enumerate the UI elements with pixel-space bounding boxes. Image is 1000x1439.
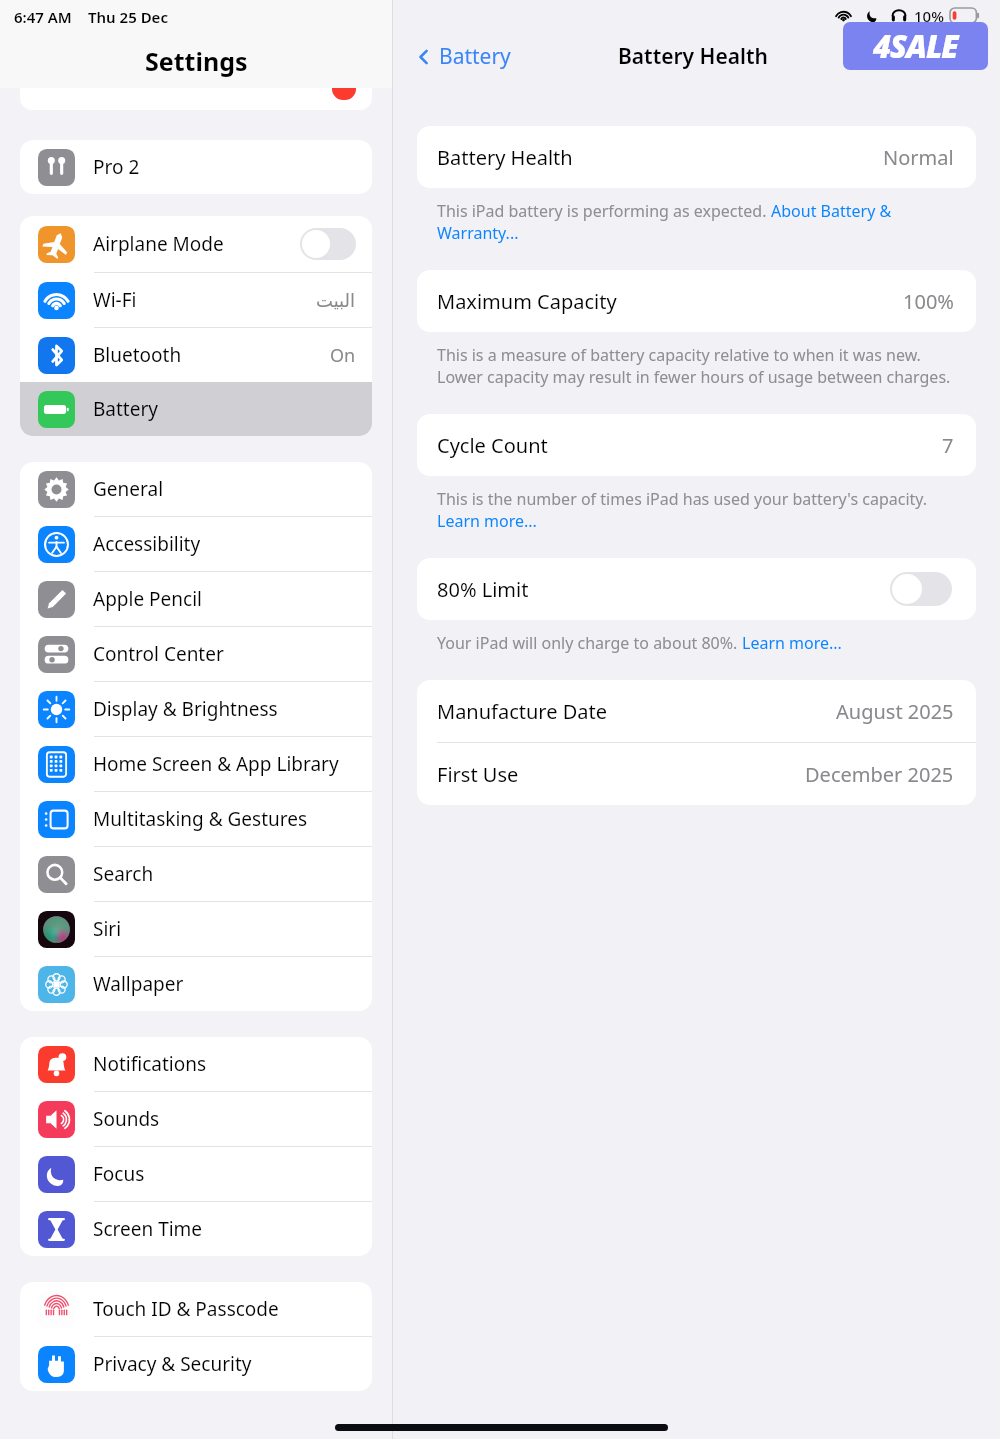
button[interactable]: Search [20, 847, 372, 901]
staticText: Notifications [93, 1051, 356, 1077]
staticText: Multitasking & Gestures [93, 806, 356, 832]
staticText: Pro 2 [93, 154, 356, 180]
staticText: Privacy & Security [93, 1351, 356, 1377]
button[interactable]: Battery Health [417, 126, 976, 188]
staticText: Siri [93, 916, 356, 942]
button[interactable]: Battery [407, 38, 517, 75]
button[interactable]: General [20, 462, 372, 516]
button[interactable]: Battery [20, 382, 372, 436]
staticText: Battery [439, 42, 511, 71]
staticText: 4SALE [873, 25, 958, 67]
button[interactable]: Pro 2 [20, 140, 372, 194]
button[interactable]: Maximum Capacity [417, 270, 976, 332]
staticText: This is a measure of battery capacity re… [437, 344, 921, 366]
staticText: This is the number of times iPad has use… [437, 488, 928, 510]
button[interactable]: Wi-Fi [20, 273, 372, 327]
button[interactable]: 4SALE watermark [843, 22, 988, 70]
staticText: Sounds [93, 1106, 356, 1132]
staticText: Maximum Capacity [437, 288, 903, 315]
staticText: August 2025 [836, 698, 954, 725]
staticText: Bluetooth [93, 342, 330, 368]
staticText: 100% [903, 288, 954, 315]
staticText: This iPad battery is performing as expec… [437, 200, 771, 222]
staticText: Wi-Fi [93, 287, 316, 313]
button[interactable] [20, 88, 372, 110]
button[interactable]: Airplane Mode [20, 216, 372, 272]
staticText: البيت [316, 290, 356, 311]
button[interactable]: Bluetooth [20, 328, 372, 382]
staticText: Battery Health [618, 42, 768, 71]
button[interactable]: Toggle off [890, 572, 952, 606]
button[interactable]: 80% Limit [417, 558, 976, 620]
button[interactable]: Focus [20, 1147, 372, 1201]
button[interactable]: Multitasking & Gestures [20, 792, 372, 846]
staticText: Apple Pencil [93, 586, 356, 612]
staticText: Display & Brightness [93, 696, 356, 722]
staticText: Your iPad will only charge to about 80%. [437, 632, 742, 654]
staticText: Focus [93, 1161, 356, 1187]
staticText: 6:47 AM [14, 7, 72, 27]
staticText: 80% Limit [437, 576, 890, 603]
button[interactable]: Siri [20, 902, 372, 956]
button[interactable]: Warranty... [437, 222, 519, 244]
staticText: Search [93, 861, 356, 887]
button[interactable]: Accessibility [20, 517, 372, 571]
staticText: Cycle Count [437, 432, 942, 459]
staticText: Battery Health [437, 144, 883, 171]
button[interactable]: Learn more... [437, 510, 537, 532]
staticText: Lower capacity may result in fewer hours… [437, 366, 951, 388]
button[interactable]: First Use [417, 743, 976, 805]
staticText: On [330, 343, 356, 368]
button[interactable]: Home Screen & App Library [20, 737, 372, 791]
staticText: 10% [914, 6, 944, 26]
staticText: Control Center [93, 641, 356, 667]
button[interactable]: About Battery & [771, 200, 892, 222]
staticText: December 2025 [805, 761, 954, 788]
staticText: Thu 25 Dec [88, 7, 168, 27]
staticText: Battery [93, 396, 356, 422]
staticText: Home Screen & App Library [93, 751, 356, 777]
staticText: Accessibility [93, 531, 356, 557]
staticText: Manufacture Date [437, 698, 836, 725]
button[interactable]: Sounds [20, 1092, 372, 1146]
button[interactable]: Control Center [20, 627, 372, 681]
button[interactable]: Touch ID & Passcode [20, 1282, 372, 1336]
staticText: General [93, 476, 356, 502]
button[interactable]: Cycle Count [417, 414, 976, 476]
staticText: Touch ID & Passcode [93, 1296, 356, 1322]
staticText: Wallpaper [93, 971, 356, 997]
staticText: Settings [145, 44, 248, 78]
button[interactable]: Screen Time [20, 1202, 372, 1256]
button[interactable]: Notifications [20, 1037, 372, 1091]
button[interactable]: Learn more... [742, 632, 842, 654]
staticText: Airplane Mode [93, 231, 300, 257]
button[interactable]: Display & Brightness [20, 682, 372, 736]
staticText: 7 [942, 432, 954, 459]
button[interactable]: Toggle off [300, 228, 356, 260]
staticText: First Use [437, 761, 805, 788]
button[interactable]: Manufacture Date [417, 680, 976, 742]
button[interactable]: Apple Pencil [20, 572, 372, 626]
button[interactable]: Wallpaper [20, 957, 372, 1011]
staticText: Normal [883, 144, 954, 171]
button[interactable]: Privacy & Security [20, 1337, 372, 1391]
staticText: Screen Time [93, 1216, 356, 1242]
